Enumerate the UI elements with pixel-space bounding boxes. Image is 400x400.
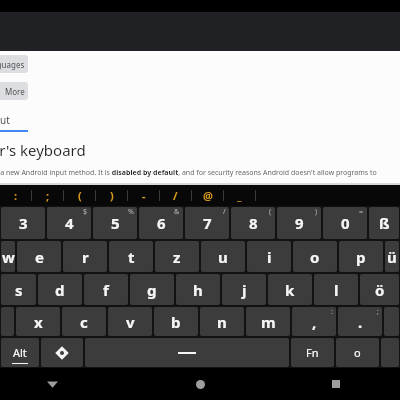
staticText: z [173,247,181,267]
button[interactable]: s [1,274,36,305]
staticText: More [5,86,25,97]
button[interactable]: r [63,241,107,272]
button[interactable]: m [246,307,290,336]
button[interactable]: Recent apps [295,368,400,400]
button[interactable]: z [155,241,199,272]
staticText: Fn [306,345,319,360]
button[interactable]: Alt [1,338,39,367]
staticText: j [242,280,247,300]
staticText: m [261,312,276,332]
button[interactable]: Space [85,338,289,367]
staticText: ß [379,213,390,233]
staticText: ) [315,207,318,217]
button[interactable]: h [176,274,220,305]
button[interactable]: , [292,307,336,336]
button[interactable]: l [314,274,358,305]
button[interactable]: c [62,307,106,336]
button[interactable]: j [222,274,266,305]
button[interactable]: . [338,307,382,336]
button[interactable]: ß [369,207,399,239]
button[interactable]: Layout [0,113,28,132]
button[interactable]: Fn [291,338,334,367]
button[interactable]: v [108,307,152,336]
button[interactable]: p [339,241,383,272]
staticText: 5 [111,213,120,233]
staticText: Hacker's keyboard [0,140,86,160]
staticText: ; [377,307,379,317]
staticText: ö [375,280,385,300]
button[interactable]: ü [385,241,399,272]
staticText: 4 [65,213,74,233]
button[interactable]: 3 [1,207,45,239]
button[interactable]: Home [155,368,245,400]
button[interactable]: i [247,241,291,272]
staticText: ü [387,247,397,267]
button[interactable]: 4 [47,207,91,239]
staticText: o [354,345,361,360]
button[interactable]: ; [32,185,63,206]
button[interactable]: 5 [93,207,137,239]
button[interactable]: b [154,307,198,336]
button[interactable]: / [160,185,191,206]
button[interactable]: n [200,307,244,336]
button[interactable]: t [109,241,153,272]
staticText: Layout [0,113,10,127]
button[interactable]: d [38,274,82,305]
button[interactable]: @ [192,185,223,206]
staticText: = [359,207,364,217]
button[interactable]: 6 [139,207,183,239]
staticText: / [223,207,226,217]
staticText: w [2,247,15,267]
button[interactable]: f [84,274,128,305]
staticText: f [103,280,109,300]
staticText: _ [237,188,242,203]
button[interactable]: k [268,274,312,305]
button[interactable]: ) [96,185,127,206]
button[interactable]: o [336,338,379,367]
staticText: l [334,280,339,300]
staticText: k [285,280,295,300]
button[interactable]: 9 [277,207,321,239]
staticText: p [356,247,366,267]
staticText: v [126,312,135,332]
button[interactable]: Shift [1,307,14,336]
staticText: 0 [341,213,350,233]
button[interactable]: ö [360,274,399,305]
button[interactable]: u [201,241,245,272]
staticText: 9 [295,213,304,233]
button[interactable]: 0 [323,207,367,239]
staticText: i [267,247,272,267]
button[interactable]: - [128,185,159,206]
staticText: r [82,247,89,267]
button[interactable]: : [0,185,31,206]
staticText: % [128,207,134,217]
staticText: u [218,247,228,267]
staticText: e [35,247,44,267]
button[interactable]: Back [0,368,105,400]
button[interactable]: More [0,82,28,100]
staticText: n [217,312,227,332]
button[interactable]: 8 [231,207,275,239]
button[interactable]: _ [224,185,255,206]
staticText: ; [46,188,50,203]
button[interactable]: o [293,241,337,272]
button[interactable]: w [1,241,15,272]
button[interactable]: Switch input method [41,338,83,367]
button[interactable]: Languages [0,55,28,73]
staticText: / [173,188,178,203]
staticText: Alt [13,345,27,360]
button[interactable]: e [17,241,61,272]
staticText: , [312,312,317,332]
staticText: s [15,280,23,300]
button[interactable]: g [130,274,174,305]
button[interactable]: ( [64,185,95,206]
staticText: ( [269,207,272,217]
button[interactable]: x [16,307,60,336]
button[interactable]: 7 [185,207,229,239]
staticText: - [142,188,146,203]
staticText: : [331,307,333,317]
staticText: o [310,247,320,267]
